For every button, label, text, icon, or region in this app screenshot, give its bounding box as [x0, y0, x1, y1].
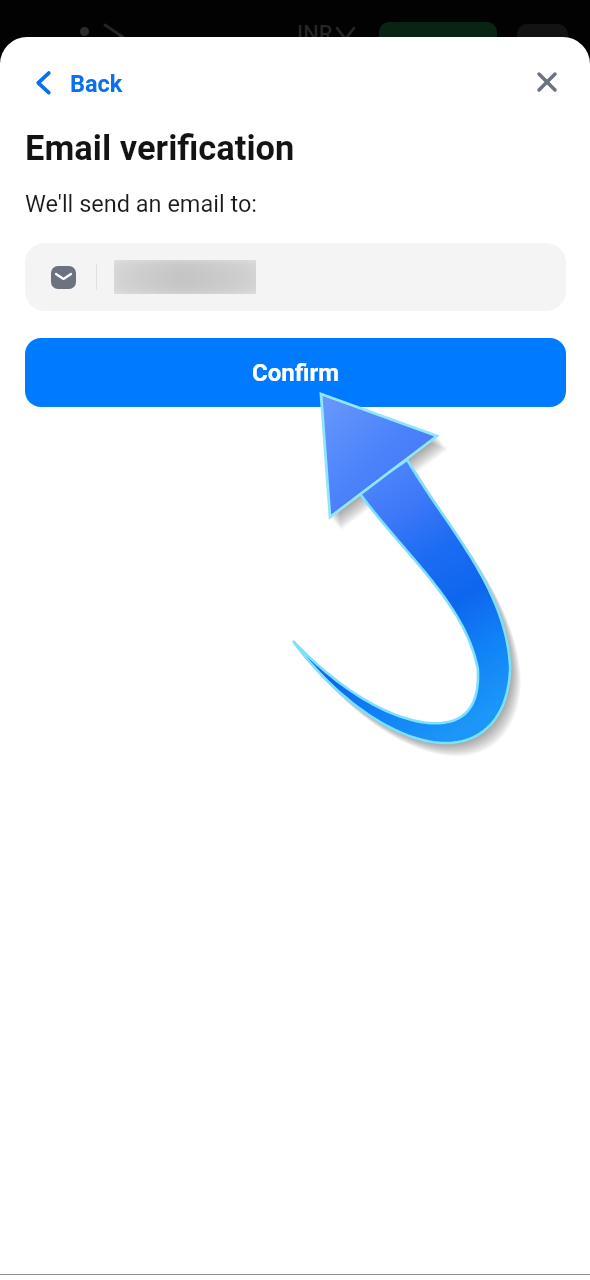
- button[interactable]: Confirm: [25, 338, 566, 407]
- staticText: INR: [297, 21, 333, 47]
- button[interactable]: Close: [526, 61, 568, 103]
- staticText: Email verification: [25, 128, 295, 168]
- staticText: We'll send an email to:: [25, 190, 258, 218]
- button[interactable]: Back: [32, 64, 127, 104]
- staticText: Back: [70, 70, 123, 98]
- button[interactable]: [25, 243, 566, 311]
- staticText: Confirm: [252, 359, 339, 387]
